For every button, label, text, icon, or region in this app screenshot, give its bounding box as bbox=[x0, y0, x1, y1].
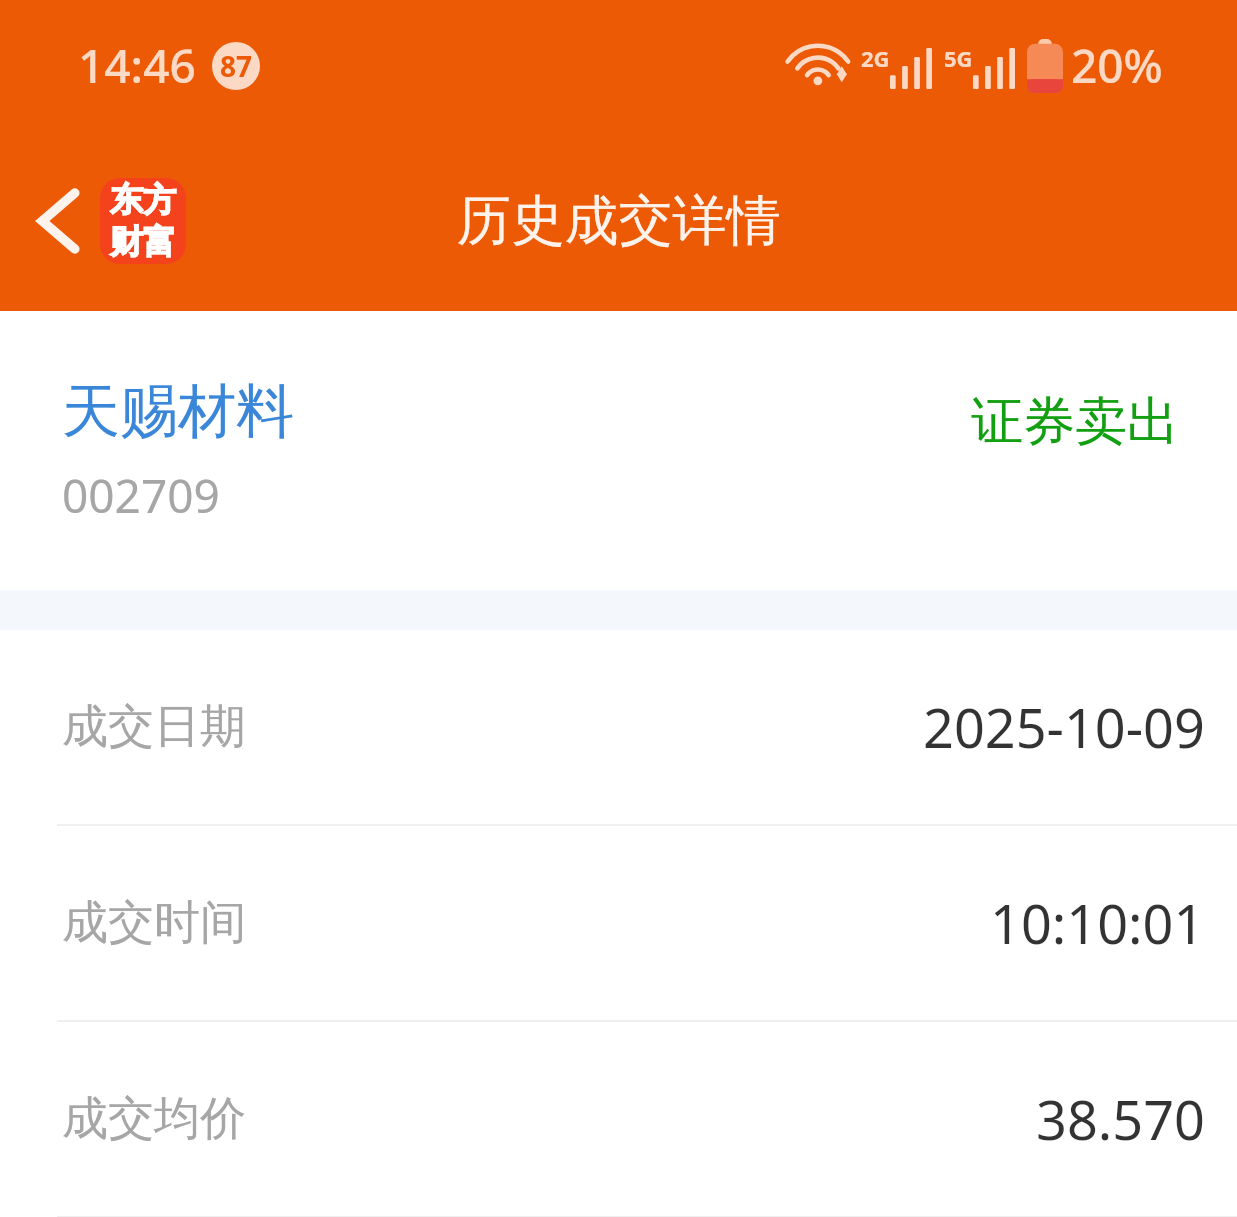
button[interactable]: 成交日期 bbox=[0, 630, 1237, 824]
staticText: 38.570 bbox=[1036, 1082, 1205, 1156]
staticText: 2025-10-09 bbox=[923, 690, 1205, 764]
staticText: 20% bbox=[1071, 34, 1163, 97]
staticText: 10:10:01 bbox=[990, 886, 1205, 960]
staticText: 002709 bbox=[62, 464, 220, 527]
staticText: 2G bbox=[861, 43, 890, 73]
button[interactable]: 返回 bbox=[0, 166, 202, 276]
staticText: 历史成交详情 bbox=[0, 187, 1237, 255]
button[interactable]: 成交均价 bbox=[0, 1022, 1237, 1216]
staticText: 成交时间 bbox=[62, 894, 246, 952]
button[interactable]: 天赐材料 bbox=[0, 311, 1237, 590]
staticText: 东方 bbox=[110, 179, 176, 221]
staticText: 成交日期 bbox=[62, 698, 246, 756]
staticText: 14:46 bbox=[78, 34, 196, 97]
staticText: 5G bbox=[944, 43, 973, 73]
button[interactable]: 成交时间 bbox=[0, 826, 1237, 1020]
staticText: 证券卖出 bbox=[971, 389, 1179, 455]
staticText: 成交均价 bbox=[62, 1090, 246, 1148]
staticText: 天赐材料 bbox=[62, 375, 294, 448]
staticText: 87 bbox=[220, 47, 253, 85]
staticText: 财富 bbox=[110, 221, 176, 263]
